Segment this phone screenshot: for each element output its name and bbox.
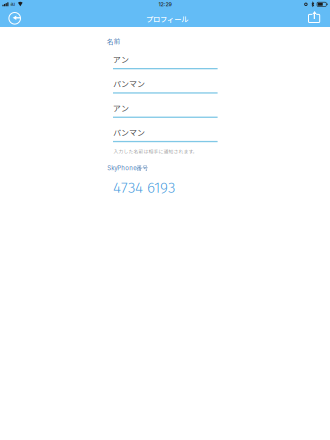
button[interactable]: Share — [299, 7, 329, 31]
button[interactable]: アン — [113, 53, 218, 69]
staticText: 入力した名前は相手に通知されます。 — [114, 148, 198, 155]
staticText: SkyPhone番号 — [107, 164, 148, 172]
staticText: プロフィール — [146, 13, 188, 24]
staticText: パンマン — [113, 78, 145, 89]
button[interactable]: アン — [113, 101, 218, 118]
staticText: 12:29 — [158, 1, 171, 8]
staticText: アン — [113, 102, 129, 114]
button[interactable]: Back — [0, 6, 32, 30]
staticText: au — [10, 2, 15, 7]
staticText: パンマン — [113, 126, 145, 138]
button[interactable]: パンマン — [113, 77, 218, 94]
staticText: アン — [113, 53, 129, 65]
button[interactable]: パンマン — [113, 126, 218, 142]
staticText: 4734 6193 — [113, 178, 175, 197]
staticText: 名前 — [107, 36, 121, 46]
